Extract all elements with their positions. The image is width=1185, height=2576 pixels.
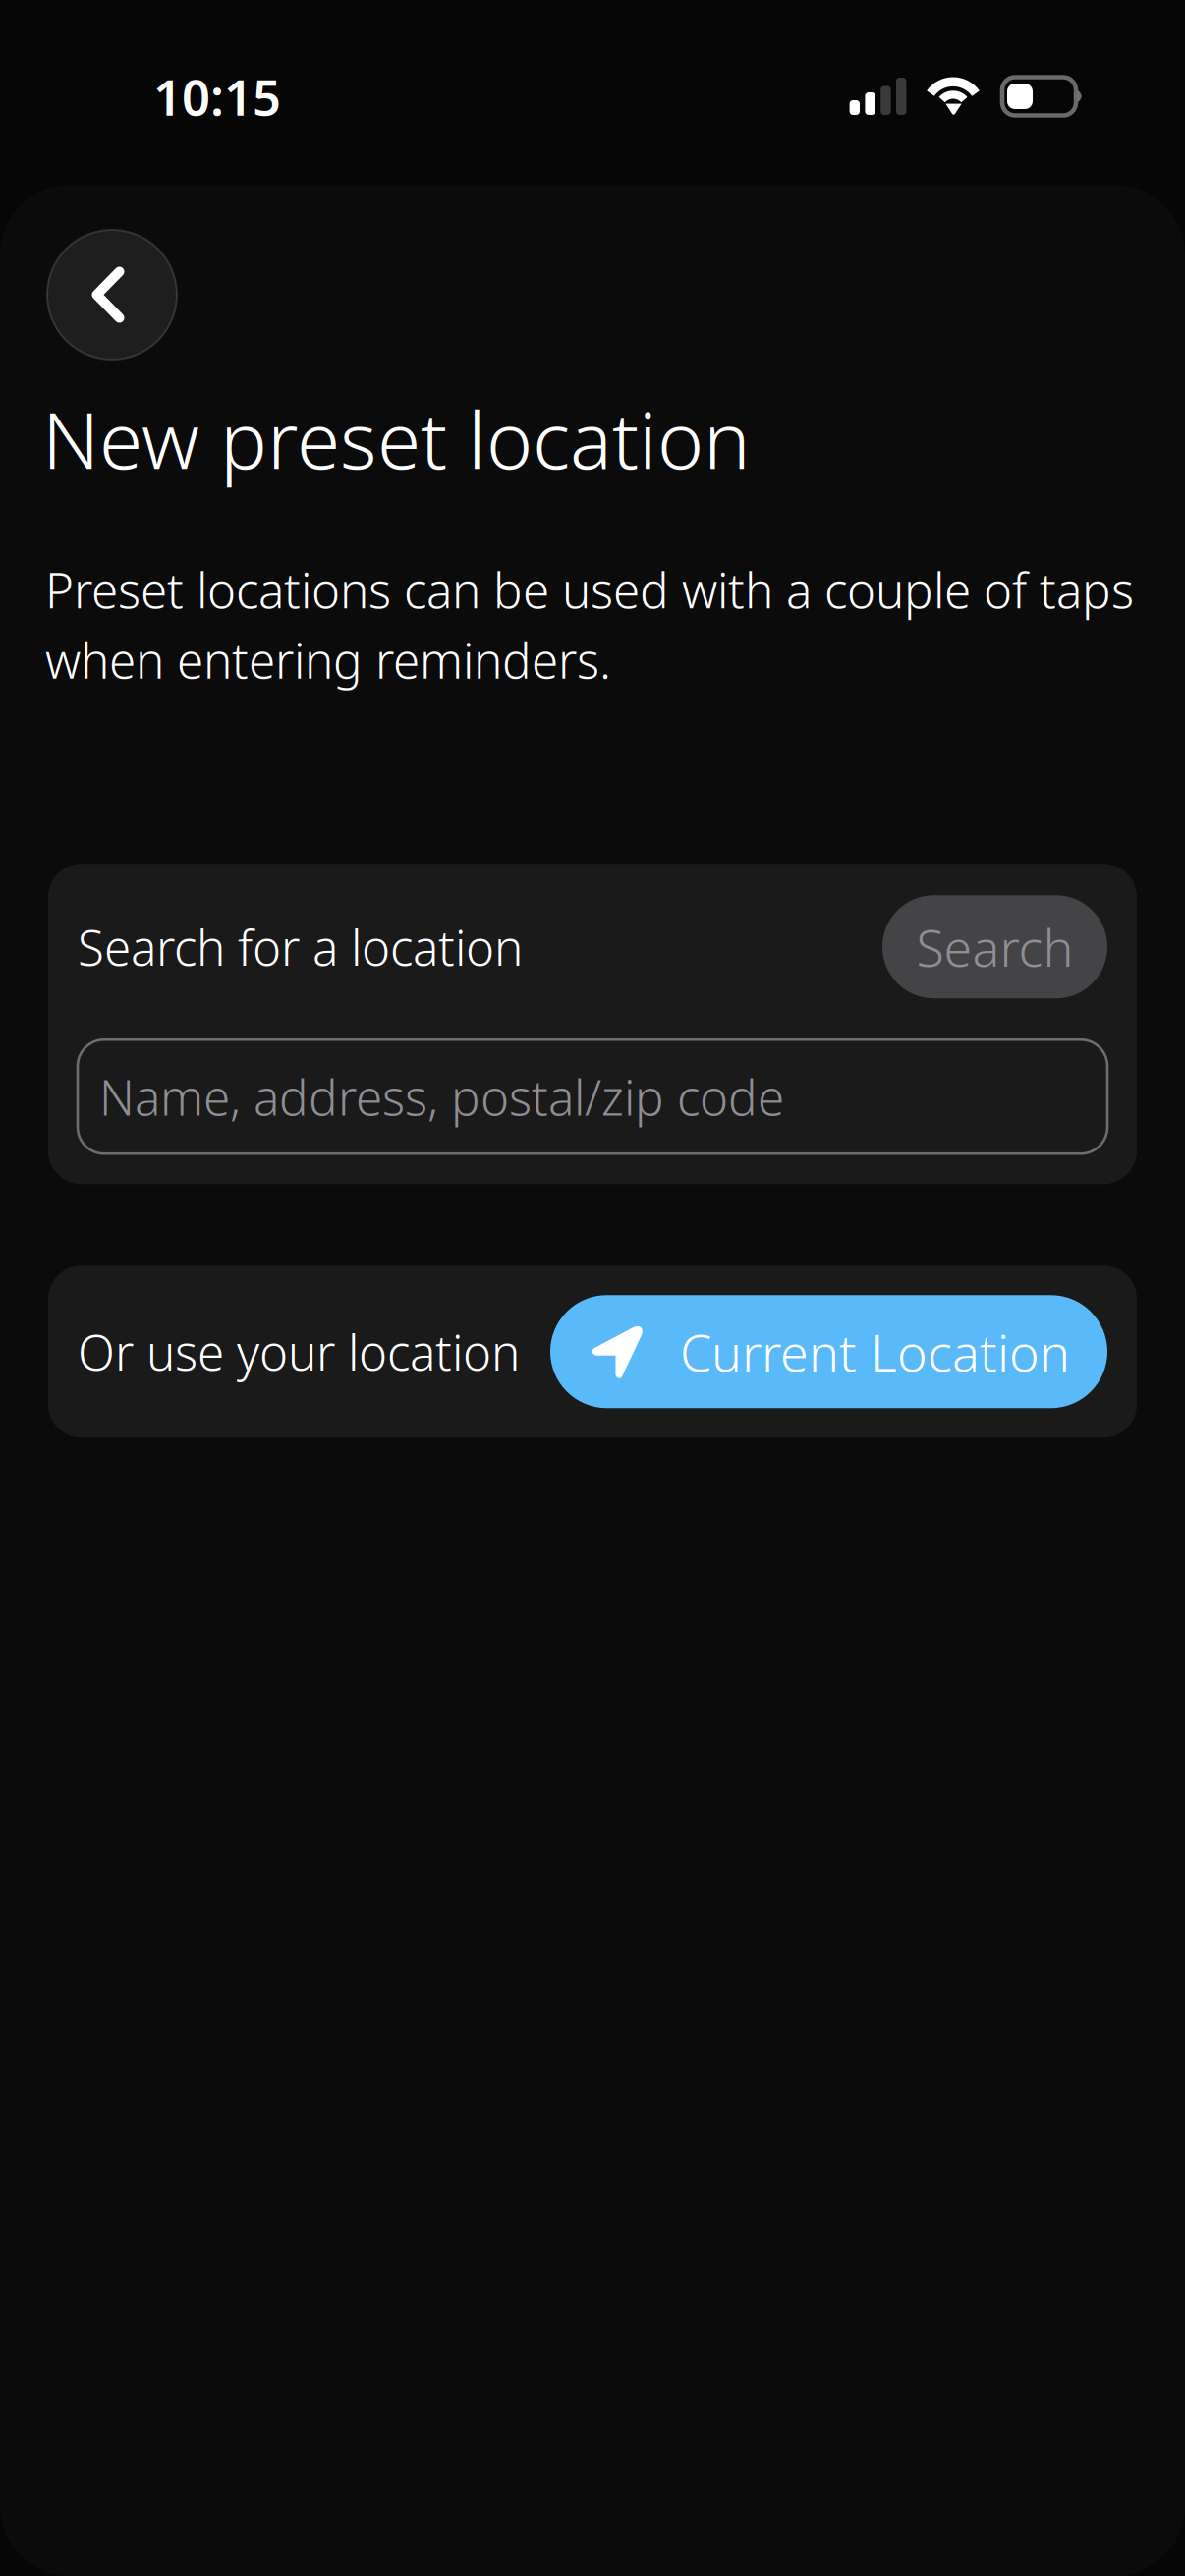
staticText: New preset location xyxy=(42,386,751,490)
button[interactable]: Search xyxy=(882,895,1107,998)
button[interactable]: Name, address, postal/zip code xyxy=(78,1040,1107,1154)
staticText: Current Location xyxy=(680,1318,1070,1386)
staticText: Search for a location xyxy=(78,915,523,979)
staticText: Search xyxy=(916,913,1073,981)
staticText: Name, address, postal/zip code xyxy=(99,1064,784,1129)
staticText: Preset locations can be used with a coup… xyxy=(45,557,1134,692)
staticText: 10:15 xyxy=(153,63,281,129)
button[interactable]: Current Location xyxy=(550,1295,1107,1408)
button[interactable]: Back xyxy=(47,230,177,360)
staticText: Or use your location xyxy=(78,1319,520,1384)
